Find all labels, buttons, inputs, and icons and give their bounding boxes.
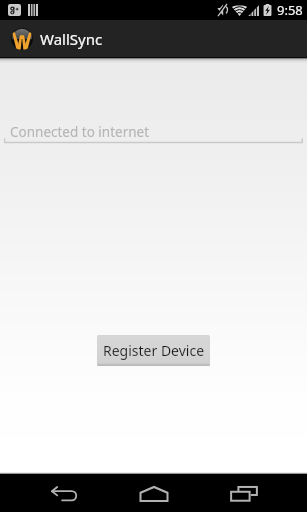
button[interactable]: Back xyxy=(25,479,102,508)
staticText: WallSync xyxy=(40,29,103,49)
staticText: Connected to internet xyxy=(10,123,150,141)
staticText: Register Device xyxy=(103,341,205,360)
button[interactable]: Recent apps xyxy=(206,479,282,508)
button[interactable]: Register Device xyxy=(97,335,210,366)
button[interactable]: Home xyxy=(115,479,193,508)
staticText: 9:58 xyxy=(277,1,303,19)
